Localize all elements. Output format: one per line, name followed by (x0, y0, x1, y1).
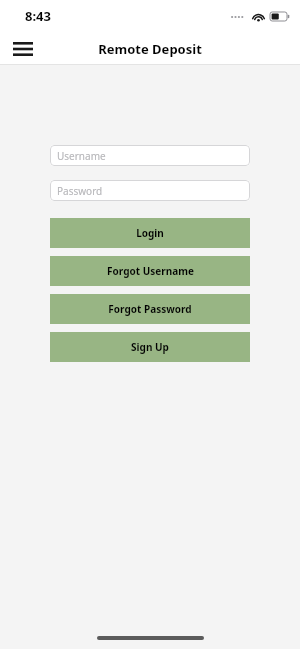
staticText: 8:43 (25, 7, 51, 25)
button[interactable]: Username (50, 145, 250, 166)
staticText: Sign Up (131, 340, 169, 354)
staticText: Forgot Username (107, 264, 194, 278)
staticText: Remote Deposit (98, 40, 202, 58)
button[interactable]: Password (50, 180, 250, 201)
button[interactable]: Open navigation menu (5, 34, 41, 64)
button[interactable]: Forgot Password (50, 294, 250, 324)
button[interactable]: Forgot Username (50, 256, 250, 286)
staticText: Login (136, 226, 164, 240)
button[interactable]: Login (50, 218, 250, 248)
staticText: Password (57, 184, 103, 198)
staticText: Forgot Password (108, 302, 192, 316)
staticText: Username (57, 149, 106, 163)
button[interactable]: Sign Up (50, 332, 250, 362)
